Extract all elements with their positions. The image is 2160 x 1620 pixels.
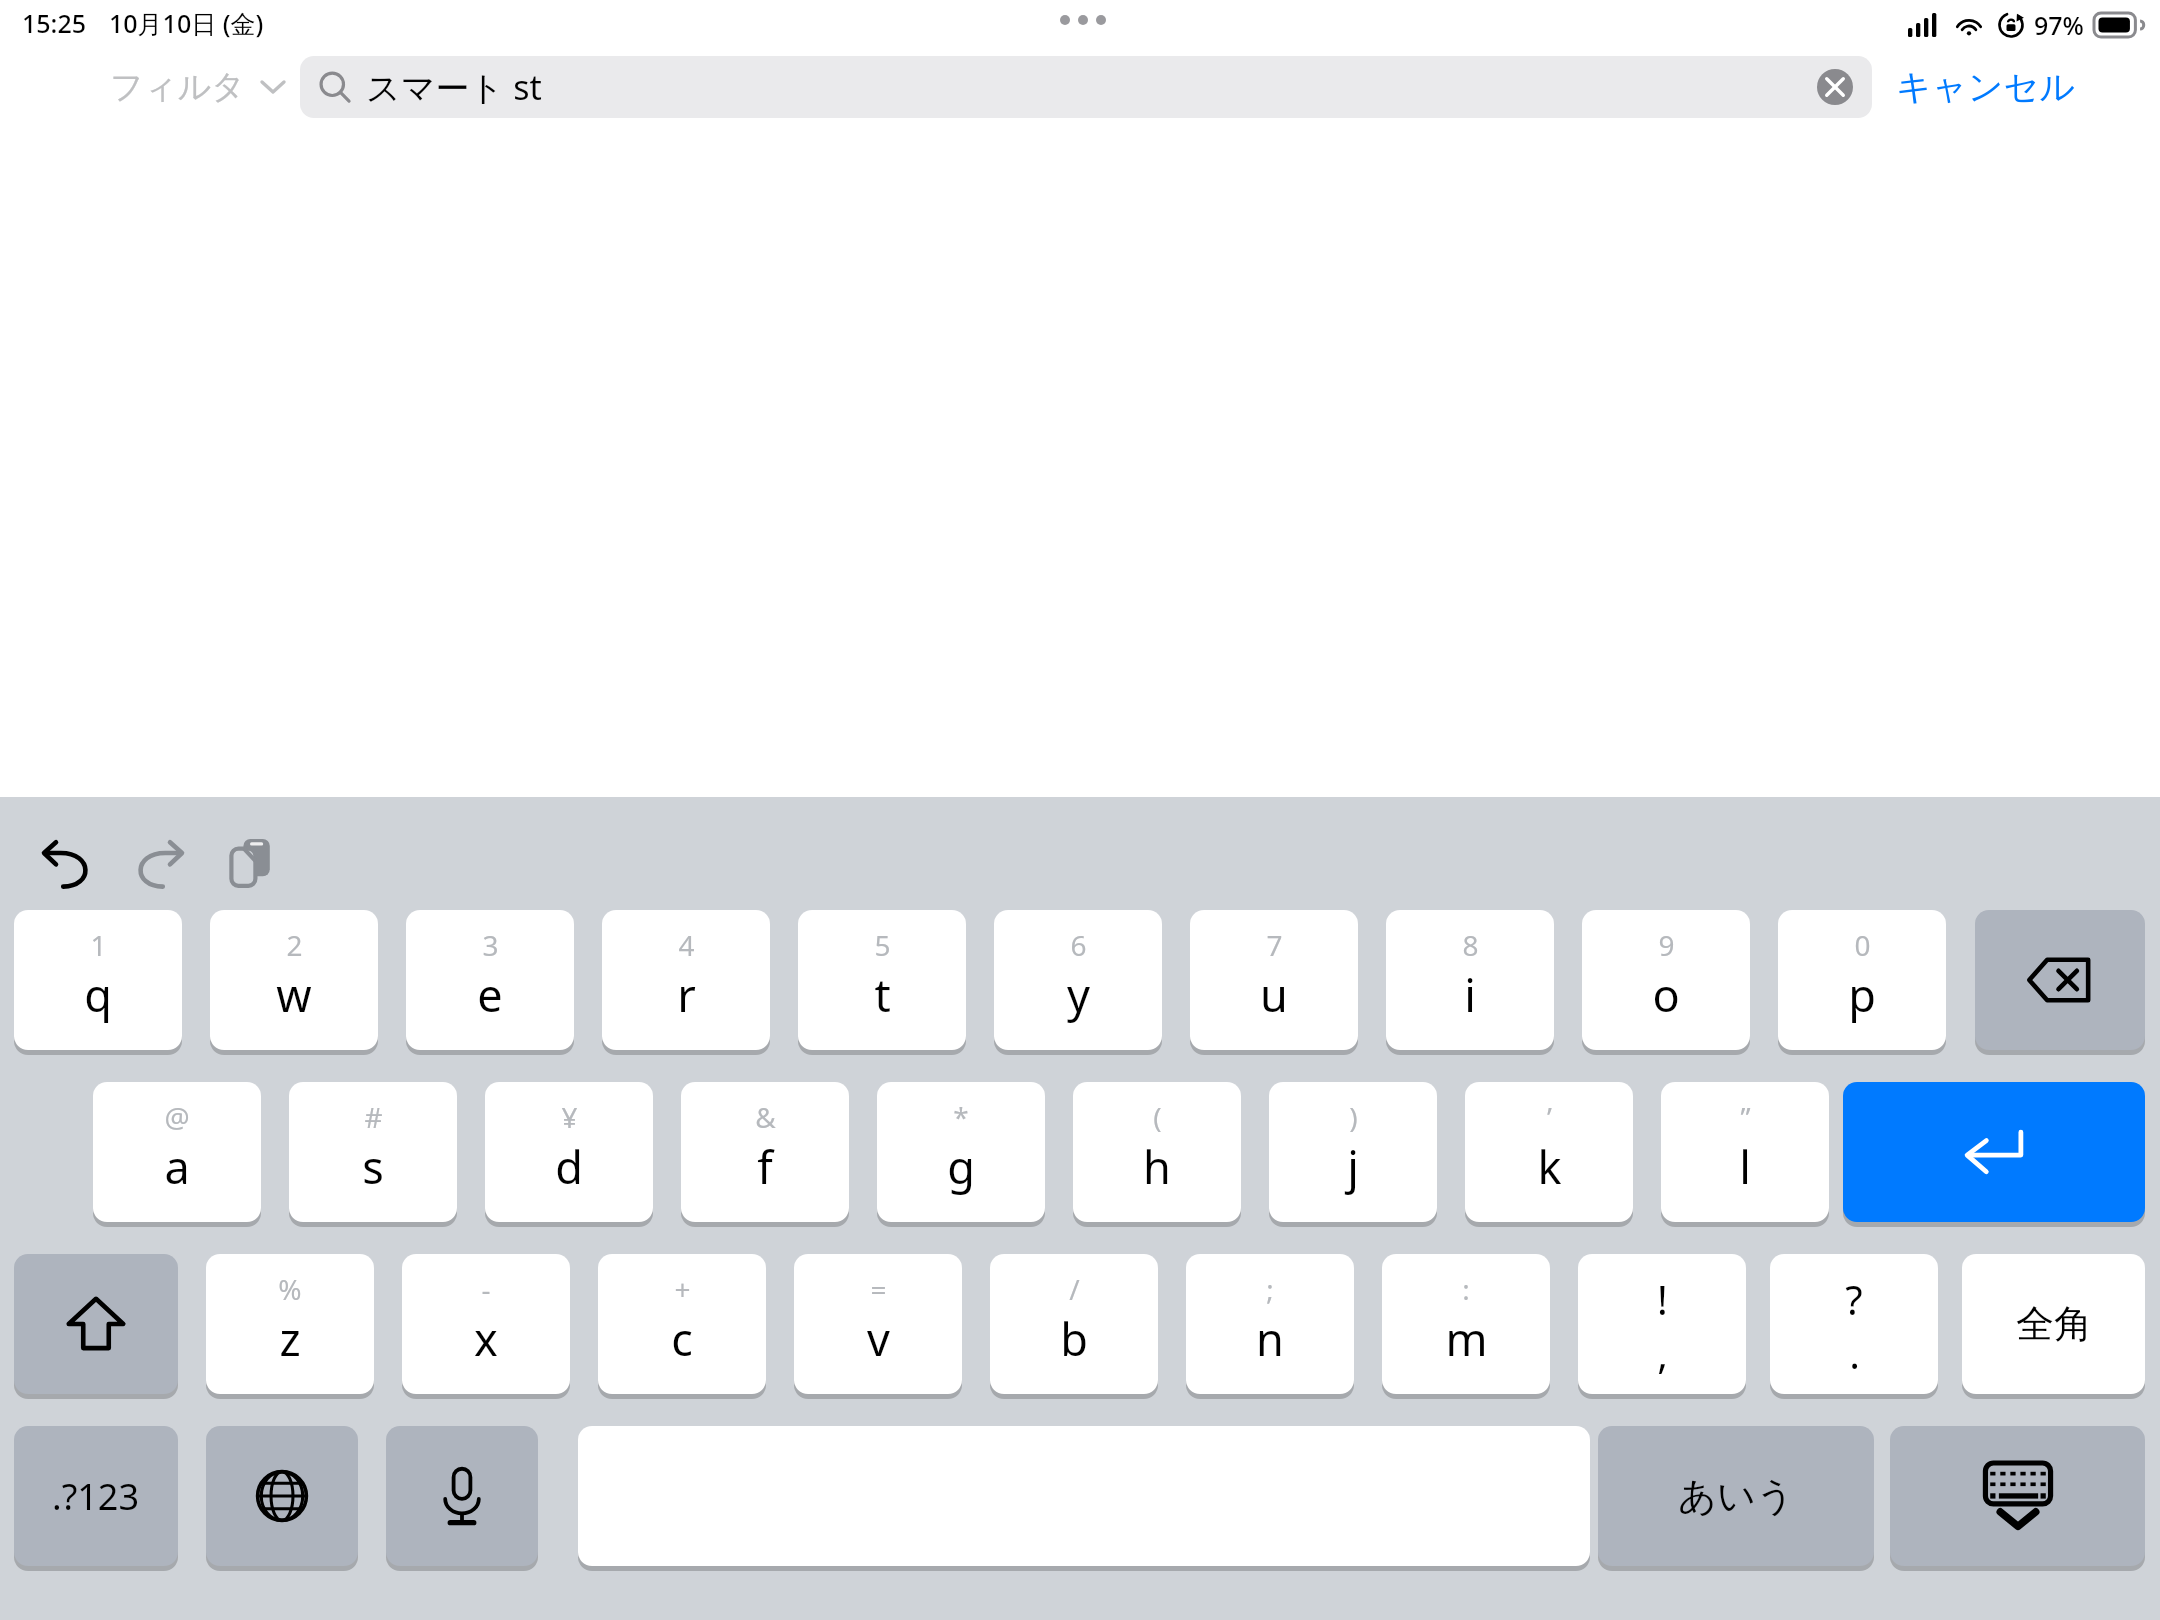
staticText: p bbox=[1848, 964, 1876, 1025]
button[interactable]: Clear text bbox=[1804, 56, 1866, 118]
staticText: : bbox=[1462, 1270, 1470, 1308]
staticText: & bbox=[755, 1098, 776, 1136]
staticText: q bbox=[84, 964, 112, 1025]
staticText: 7 bbox=[1266, 926, 1283, 964]
staticText: w bbox=[276, 964, 312, 1025]
button[interactable]: 全角 bbox=[1962, 1254, 2145, 1394]
button[interactable]: Change keyboard language bbox=[206, 1426, 358, 1566]
button[interactable]: 4 bbox=[602, 910, 770, 1050]
button[interactable]: 1 bbox=[14, 910, 182, 1050]
button[interactable]: Shift bbox=[14, 1254, 178, 1394]
staticText: j bbox=[1347, 1136, 1359, 1197]
button[interactable]: & bbox=[681, 1082, 849, 1222]
button[interactable]: Return bbox=[1843, 1082, 2145, 1222]
staticText: s bbox=[362, 1136, 384, 1197]
staticText: u bbox=[1260, 964, 1288, 1025]
button[interactable]: : bbox=[1382, 1254, 1550, 1394]
button[interactable]: Editing action bbox=[30, 827, 106, 903]
staticText: t bbox=[874, 964, 891, 1025]
button[interactable]: ) bbox=[1269, 1082, 1437, 1222]
staticText: o bbox=[1652, 964, 1680, 1025]
staticText: z bbox=[279, 1308, 301, 1369]
button[interactable]: あいう bbox=[1598, 1426, 1874, 1566]
staticText: # bbox=[364, 1098, 383, 1136]
button[interactable]: 6 bbox=[994, 910, 1162, 1050]
staticText: r bbox=[677, 964, 696, 1025]
staticText: b bbox=[1060, 1308, 1088, 1369]
staticText: + bbox=[674, 1270, 691, 1308]
staticText: 0 bbox=[1854, 926, 1871, 964]
staticText: 6 bbox=[1070, 926, 1087, 964]
staticText: x bbox=[474, 1308, 498, 1369]
staticText: 3 bbox=[482, 926, 499, 964]
button[interactable]: ¥ bbox=[485, 1082, 653, 1222]
staticText: 1 bbox=[90, 926, 107, 964]
button[interactable]: 0 bbox=[1778, 910, 1946, 1050]
button[interactable]: 7 bbox=[1190, 910, 1358, 1050]
button[interactable]: Backspace bbox=[1975, 910, 2145, 1050]
button[interactable]: フィルタ bbox=[106, 56, 290, 118]
button[interactable]: ; bbox=[1186, 1254, 1354, 1394]
button[interactable]: ’ bbox=[1465, 1082, 1633, 1222]
staticText: f bbox=[757, 1136, 773, 1197]
button[interactable]: ( bbox=[1073, 1082, 1241, 1222]
staticText: .?123 bbox=[52, 1472, 140, 1521]
button[interactable]: キャンセル bbox=[1890, 56, 2082, 118]
staticText: 全角 bbox=[2016, 1300, 2092, 1348]
button[interactable]: 3 bbox=[406, 910, 574, 1050]
staticText: * bbox=[953, 1098, 969, 1136]
staticText: ’ bbox=[1547, 1098, 1552, 1136]
button[interactable]: * bbox=[877, 1082, 1045, 1222]
button[interactable]: Editing action bbox=[215, 825, 291, 901]
button[interactable]: スマート st bbox=[300, 56, 1872, 118]
button[interactable]: @ bbox=[93, 1082, 261, 1222]
staticText: フィルタ bbox=[110, 66, 246, 108]
button[interactable]: 5 bbox=[798, 910, 966, 1050]
button[interactable]: - bbox=[402, 1254, 570, 1394]
button[interactable]: ” bbox=[1661, 1082, 1829, 1222]
staticText: a bbox=[164, 1136, 190, 1197]
staticText: 10月10日 (金) bbox=[109, 6, 264, 40]
button[interactable]: Editing action bbox=[120, 827, 196, 903]
staticText: y bbox=[1067, 964, 1090, 1025]
staticText: k bbox=[1537, 1136, 1562, 1197]
button[interactable]: ? bbox=[1770, 1254, 1938, 1394]
staticText: ¥ bbox=[561, 1098, 578, 1136]
button[interactable]: 9 bbox=[1582, 910, 1750, 1050]
staticText: 15:25 bbox=[22, 6, 87, 40]
staticText: キャンセル bbox=[1896, 65, 2076, 109]
button[interactable]: .?123 bbox=[14, 1426, 178, 1566]
staticText: ” bbox=[1740, 1098, 1751, 1136]
staticText: 5 bbox=[874, 926, 891, 964]
staticText: i bbox=[1464, 964, 1476, 1025]
staticText: d bbox=[555, 1136, 583, 1197]
button[interactable]: 8 bbox=[1386, 910, 1554, 1050]
staticText: 4 bbox=[678, 926, 695, 964]
staticText: ) bbox=[1349, 1098, 1358, 1136]
staticText: l bbox=[1739, 1136, 1751, 1197]
button[interactable]: ! bbox=[1578, 1254, 1746, 1394]
staticText: / bbox=[1069, 1270, 1080, 1308]
staticText: % bbox=[278, 1270, 302, 1308]
staticText: ? bbox=[1845, 1272, 1863, 1326]
staticText: g bbox=[947, 1136, 975, 1197]
staticText: , bbox=[1657, 1326, 1668, 1380]
button[interactable]: 2 bbox=[210, 910, 378, 1050]
staticText: スマート st bbox=[366, 64, 542, 110]
staticText: あいう bbox=[1678, 1472, 1795, 1520]
button[interactable]: Hide keyboard bbox=[1890, 1426, 2145, 1566]
staticText: 8 bbox=[1462, 926, 1479, 964]
button[interactable]: Dictation bbox=[386, 1426, 538, 1566]
staticText: = bbox=[870, 1270, 887, 1308]
staticText: @ bbox=[164, 1098, 190, 1136]
button[interactable]: + bbox=[598, 1254, 766, 1394]
staticText: v bbox=[867, 1308, 890, 1369]
button[interactable]: % bbox=[206, 1254, 374, 1394]
button[interactable]: = bbox=[794, 1254, 962, 1394]
staticText: 9 bbox=[1658, 926, 1675, 964]
staticText: h bbox=[1143, 1136, 1171, 1197]
button[interactable]: # bbox=[289, 1082, 457, 1222]
button[interactable]: / bbox=[990, 1254, 1158, 1394]
staticText: . bbox=[1849, 1326, 1860, 1380]
